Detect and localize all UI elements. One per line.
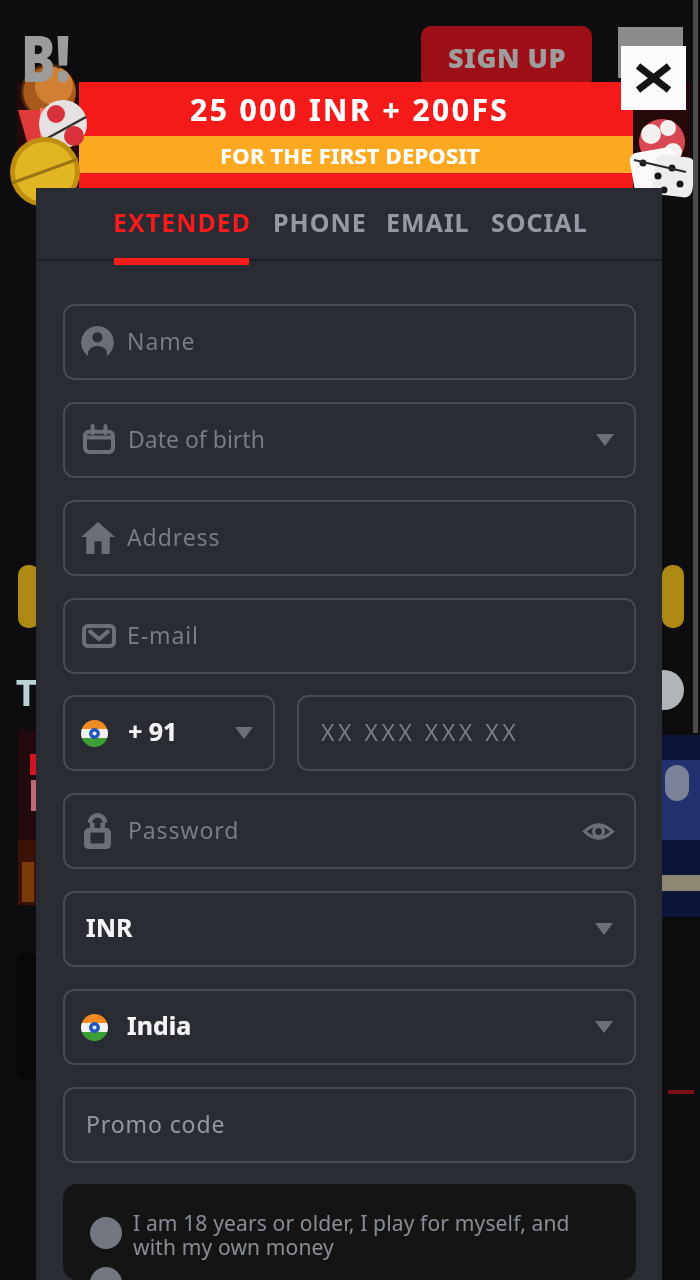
button[interactable]: XX XXX XXX XX bbox=[297, 695, 636, 771]
button[interactable]: EXTENDED bbox=[113, 205, 252, 239]
staticText: Date of birth bbox=[128, 423, 265, 454]
staticText: + 91 bbox=[128, 714, 178, 748]
button[interactable]: Address bbox=[63, 500, 636, 576]
staticText: E-mail bbox=[127, 619, 199, 650]
staticText: SIGN UP bbox=[448, 39, 566, 76]
button[interactable]: + 91 bbox=[63, 695, 275, 771]
staticText: Address bbox=[127, 521, 221, 552]
button[interactable]: SOCIAL bbox=[491, 205, 588, 239]
button[interactable]: PHONE bbox=[273, 205, 367, 239]
staticText: EMAIL bbox=[386, 205, 470, 239]
button[interactable]: India bbox=[63, 989, 636, 1065]
button[interactable]: Close bbox=[621, 46, 686, 110]
staticText: B! bbox=[21, 14, 71, 101]
staticText: INR bbox=[86, 910, 133, 944]
staticText: Promo code bbox=[86, 1108, 226, 1139]
staticText: India bbox=[127, 1008, 192, 1042]
button[interactable]: E-mail bbox=[63, 598, 636, 674]
staticText: EXTENDED bbox=[113, 205, 252, 239]
button[interactable]: INR bbox=[63, 891, 636, 967]
staticText: T bbox=[16, 668, 37, 717]
staticText: FOR THE FIRST DEPOSIT bbox=[220, 140, 480, 170]
staticText: 25 000 INR + 200FS bbox=[190, 89, 510, 130]
button[interactable]: Promo code bbox=[63, 1087, 636, 1163]
button[interactable]: I am 18 years or older, I play for mysel… bbox=[63, 1184, 636, 1280]
button[interactable]: Name bbox=[63, 304, 636, 380]
staticText: PHONE bbox=[273, 205, 367, 239]
staticText: XX XXX XXX XX bbox=[321, 716, 520, 747]
button[interactable]: SIGN UP bbox=[421, 26, 592, 88]
staticText: SOCIAL bbox=[491, 205, 588, 239]
staticText: Name bbox=[127, 325, 196, 356]
staticText: Password bbox=[128, 814, 240, 845]
button[interactable]: Password bbox=[63, 793, 636, 869]
button[interactable]: EMAIL bbox=[386, 205, 470, 239]
staticText: I am 18 years or older, I play for mysel… bbox=[133, 1209, 570, 1262]
button[interactable]: Date of birth bbox=[63, 402, 636, 478]
